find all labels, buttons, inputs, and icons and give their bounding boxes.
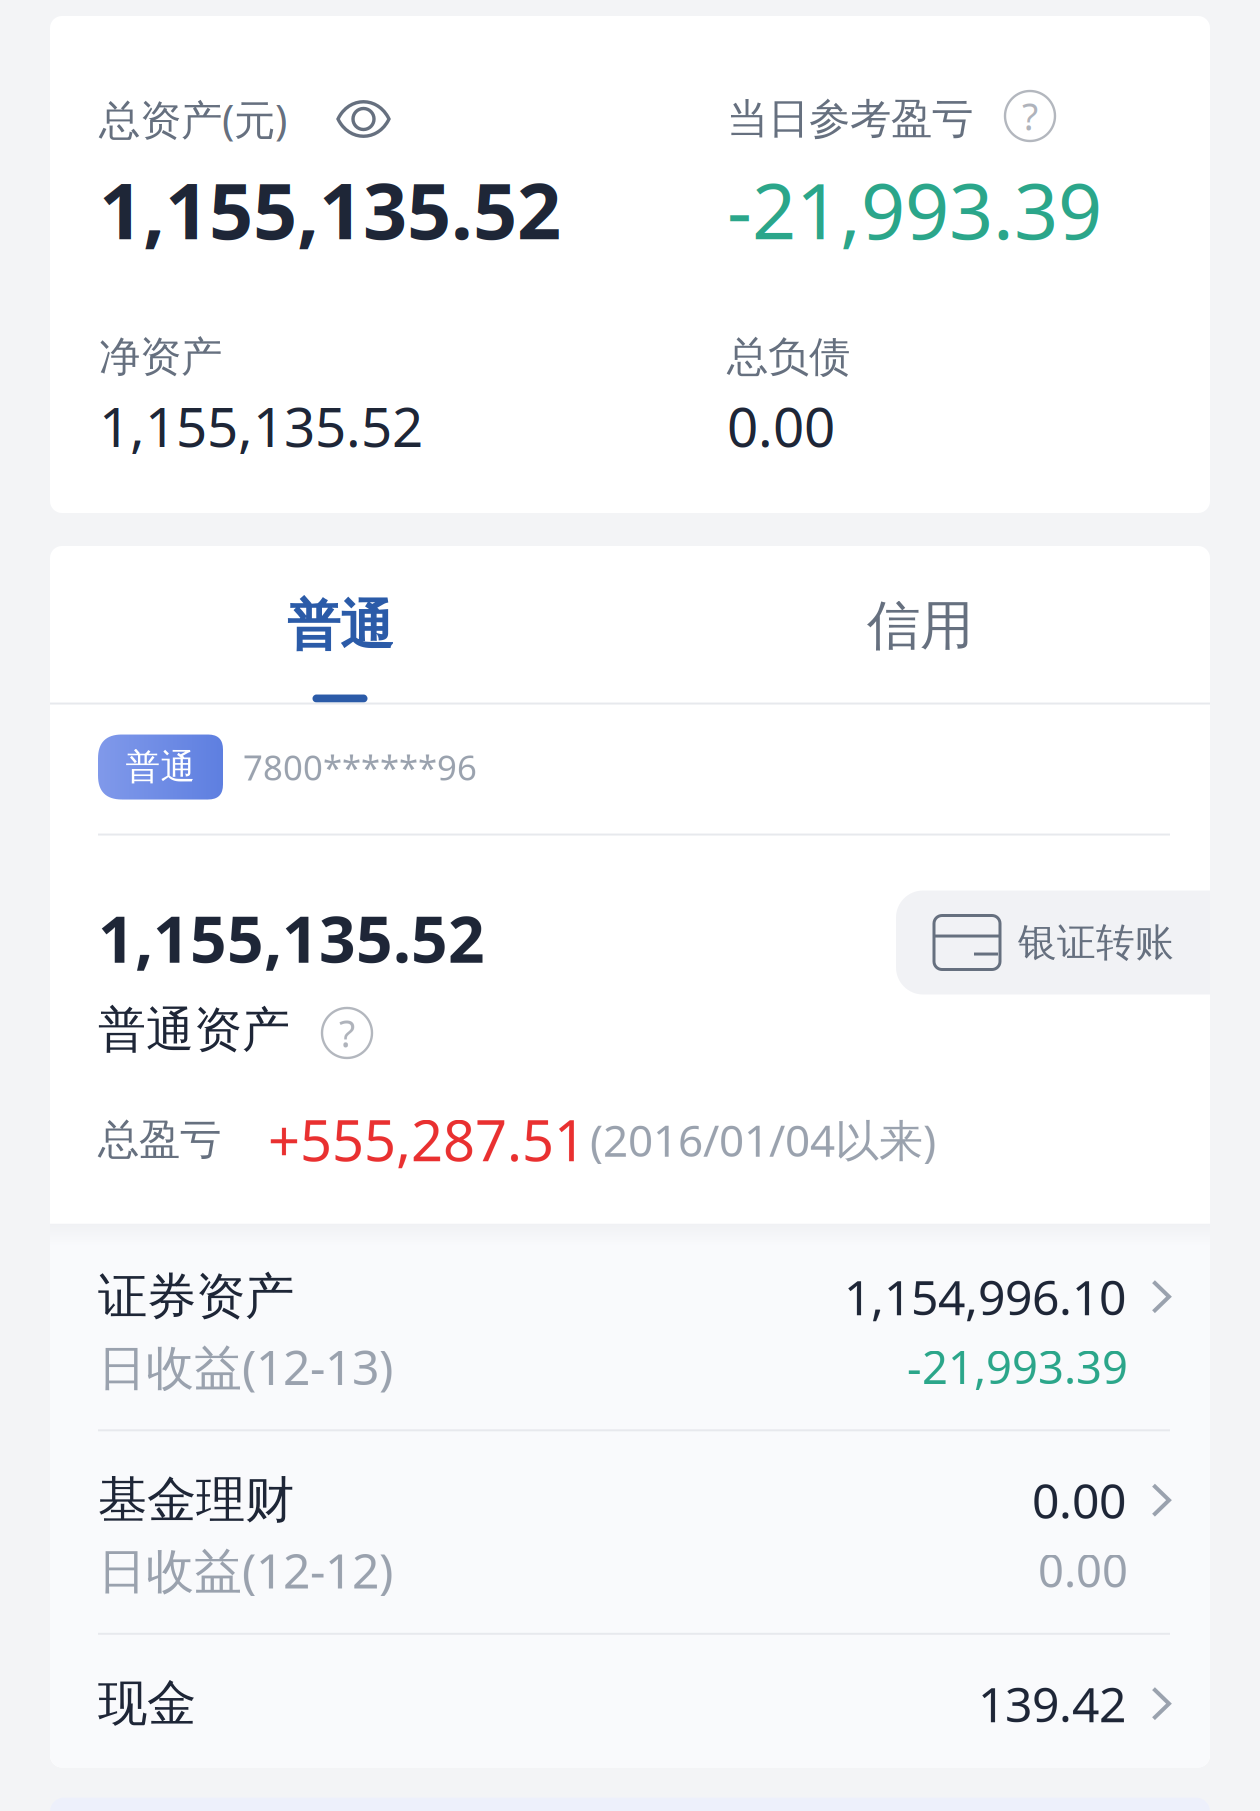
staticText: 信用	[867, 593, 973, 658]
button[interactable]: 银证转账	[896, 890, 1254, 994]
staticText: 日收益(12-12)	[98, 1538, 393, 1602]
staticText: 总负债	[727, 332, 850, 382]
button[interactable]: 普通资产说明	[322, 1008, 372, 1058]
staticText: 总资产(元)	[99, 92, 287, 146]
staticText: 普通资产	[98, 1000, 290, 1059]
staticText: (2016/01/04以来)	[590, 1110, 936, 1169]
button[interactable]: 信用	[630, 546, 1210, 702]
button[interactable]: 隐藏总资产	[336, 97, 391, 141]
staticText: 0.00	[727, 389, 835, 462]
staticText: 普通	[287, 593, 393, 658]
staticText: 0.00	[1032, 1468, 1126, 1532]
staticText: 139.42	[978, 1672, 1126, 1735]
button[interactable]: 普通	[50, 734, 1210, 799]
button[interactable]: 当日参考盈亏说明	[1005, 91, 1055, 141]
staticText: 普通	[125, 746, 195, 788]
staticText: 当日参考盈亏	[727, 94, 973, 144]
button[interactable]: 现金	[50, 1672, 1210, 1735]
staticText: 日收益(12-13)	[98, 1335, 393, 1398]
button[interactable]: 基金理财	[50, 1468, 1210, 1602]
staticText: 1,155,135.52	[99, 158, 561, 261]
staticText: -21,993.39	[907, 1336, 1128, 1396]
staticText: -21,993.39	[727, 158, 1102, 261]
staticText: +555,287.51	[268, 1102, 586, 1177]
staticText: 基金理财	[98, 1470, 294, 1530]
staticText: ?	[1022, 91, 1038, 141]
staticText: 证券资产	[98, 1266, 294, 1327]
button[interactable]: 证券资产	[50, 1265, 1210, 1398]
staticText: 0.00	[1038, 1540, 1128, 1600]
staticText: 1,154,996.10	[844, 1265, 1126, 1328]
staticText: 现金	[98, 1673, 196, 1734]
staticText: ?	[339, 1008, 355, 1058]
staticText: 7800******96	[243, 744, 477, 790]
staticText: 银证转账	[1018, 919, 1174, 966]
staticText: 1,155,135.52	[99, 389, 423, 462]
staticText: 净资产	[99, 332, 222, 382]
button[interactable]: 普通	[50, 546, 630, 702]
staticText: 1,155,135.52	[98, 895, 485, 980]
staticText: 总盈亏	[98, 1114, 221, 1165]
